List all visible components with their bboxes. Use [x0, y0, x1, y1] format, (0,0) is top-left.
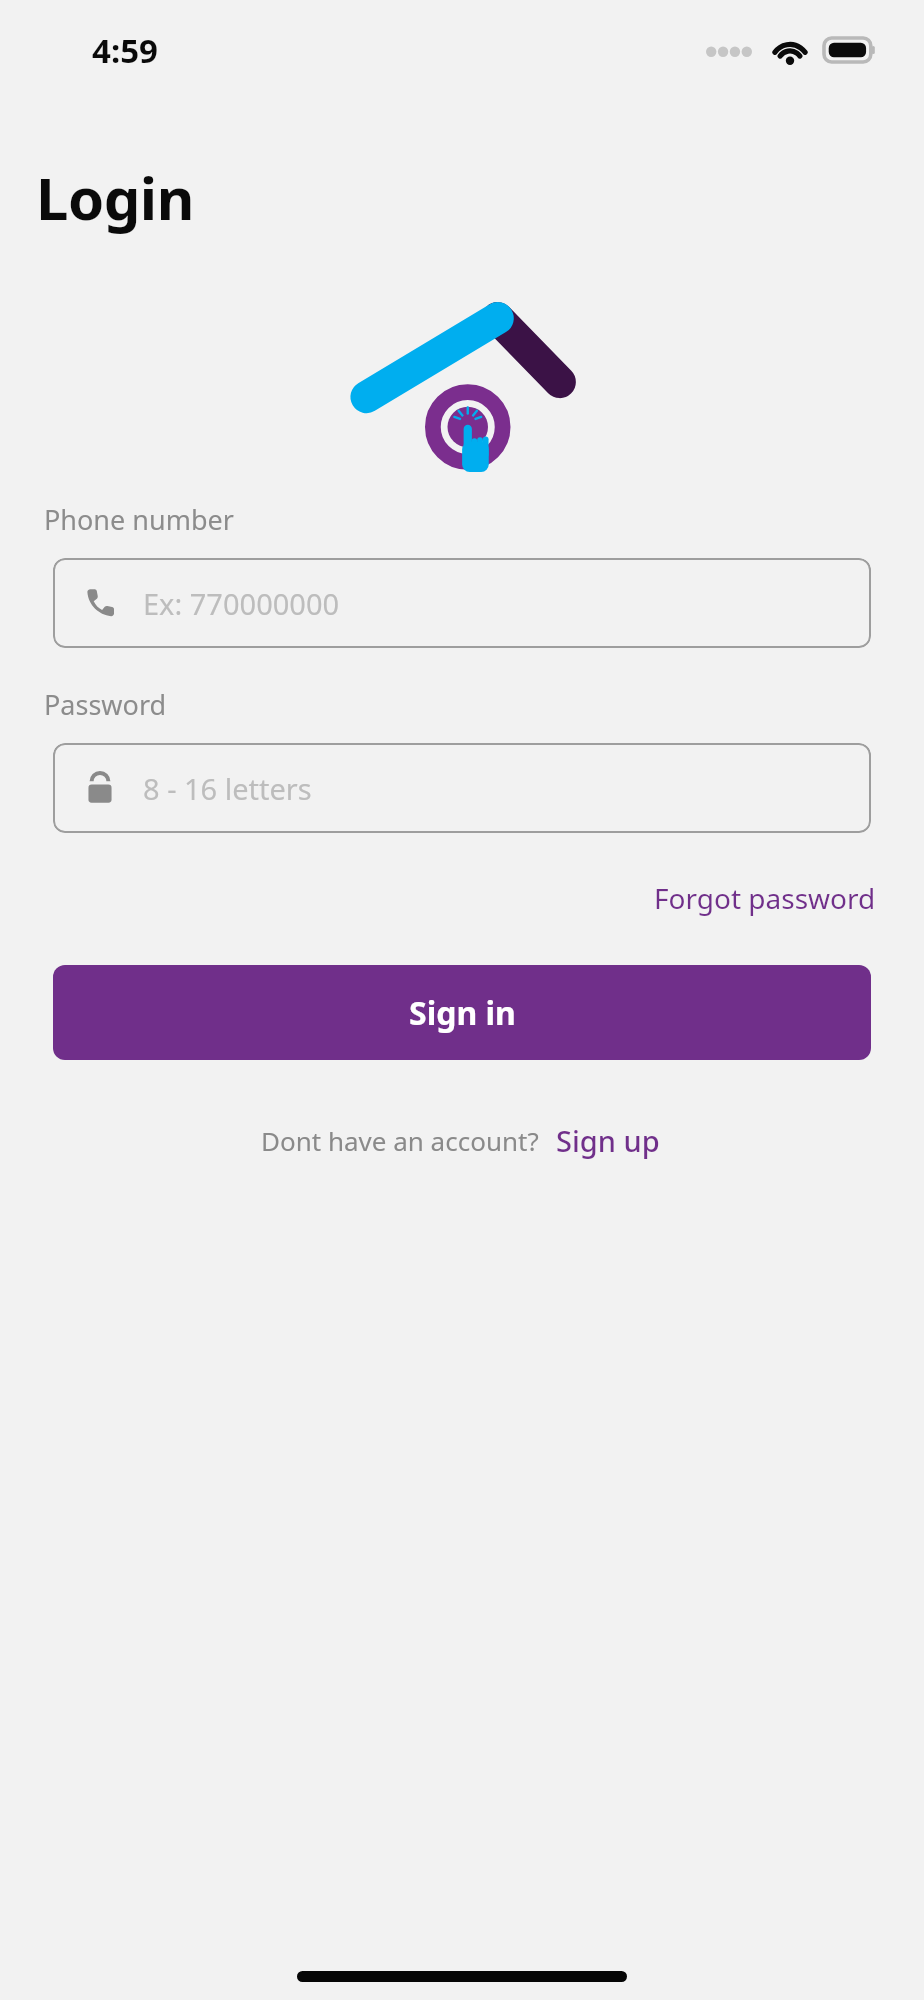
- button[interactable]: Password field: [53, 743, 871, 833]
- staticText: Dont have an account?: [261, 1123, 539, 1158]
- staticText: Forgot password: [654, 879, 876, 917]
- staticText: Phone number: [44, 501, 234, 538]
- button[interactable]: Phone number field: [53, 558, 871, 648]
- staticText: 4:59: [92, 28, 158, 73]
- staticText: Password: [44, 686, 167, 723]
- button[interactable]: Forgot password: [650, 875, 880, 921]
- staticText: Sign in: [409, 991, 516, 1035]
- button[interactable]: Sign in: [53, 965, 871, 1060]
- staticText: Login: [36, 158, 194, 237]
- staticText: 8 - 16 letters: [143, 769, 312, 808]
- button[interactable]: Sign up: [553, 1118, 663, 1163]
- staticText: Sign up: [556, 1121, 660, 1160]
- staticText: Ex: 770000000: [143, 584, 340, 623]
